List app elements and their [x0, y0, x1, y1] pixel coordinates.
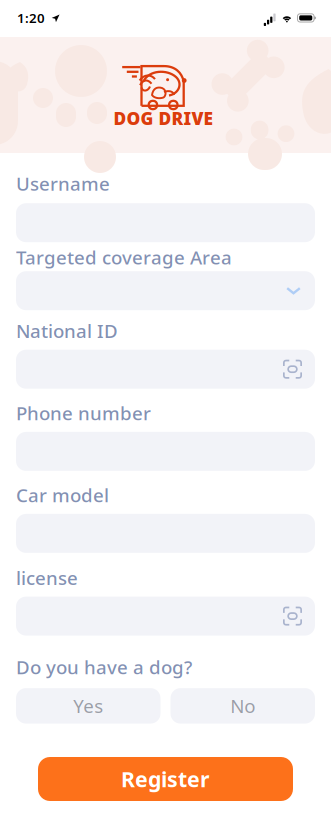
staticText: Register — [121, 765, 210, 793]
staticText: National ID — [16, 318, 118, 343]
button[interactable]: No — [170, 688, 315, 724]
button[interactable]: Yes — [16, 688, 160, 724]
button[interactable]: Register — [38, 757, 293, 801]
button[interactable] — [16, 271, 315, 310]
staticText: Username — [16, 171, 110, 196]
staticText: Yes — [73, 693, 103, 718]
staticText: Do you have a dog? — [16, 655, 192, 679]
staticText: Car model — [16, 482, 109, 507]
button[interactable] — [16, 350, 315, 389]
staticText: No — [230, 693, 255, 718]
staticText: DOG DRIVE — [113, 107, 213, 130]
staticText: license — [16, 565, 78, 590]
staticText: 1:20 — [17, 9, 45, 27]
button[interactable] — [16, 597, 315, 636]
staticText: Targeted coverage Area — [16, 245, 232, 270]
staticText: Phone number — [16, 401, 151, 425]
